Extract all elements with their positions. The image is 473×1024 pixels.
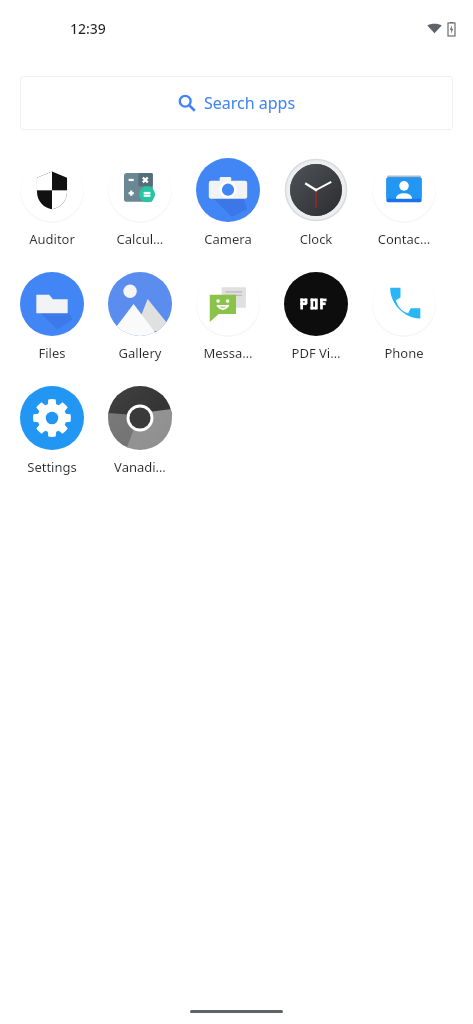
button[interactable]: Clock (272, 158, 360, 248)
button[interactable]: Search apps (20, 76, 453, 130)
button[interactable]: Gallery (96, 272, 184, 362)
button[interactable]: Camera (184, 158, 272, 248)
staticText: Messa… (184, 344, 272, 362)
staticText: Vanadi… (96, 458, 184, 476)
button[interactable]: Phone (360, 272, 448, 362)
button[interactable]: Files (8, 272, 96, 362)
staticText: Auditor (8, 230, 96, 248)
staticText: 12:39 (70, 19, 106, 38)
staticText: Contac… (360, 230, 448, 248)
staticText: Calcul… (96, 230, 184, 248)
staticText: PDF Vi… (272, 344, 360, 362)
button[interactable]: Settings (8, 386, 96, 476)
button[interactable]: Calcul… (96, 158, 184, 248)
staticText: Phone (360, 344, 448, 362)
staticText: Clock (272, 230, 360, 248)
button[interactable]: Vanadi… (96, 386, 184, 476)
staticText: Files (8, 344, 96, 362)
button[interactable]: Auditor (8, 158, 96, 248)
staticText: Settings (8, 458, 96, 476)
button[interactable]: PDF Vi… (272, 272, 360, 362)
staticText: Camera (184, 230, 272, 248)
staticText: Search apps (204, 92, 296, 114)
button[interactable]: Messa… (184, 272, 272, 362)
staticText: Gallery (96, 344, 184, 362)
button[interactable]: Contac… (360, 158, 448, 248)
